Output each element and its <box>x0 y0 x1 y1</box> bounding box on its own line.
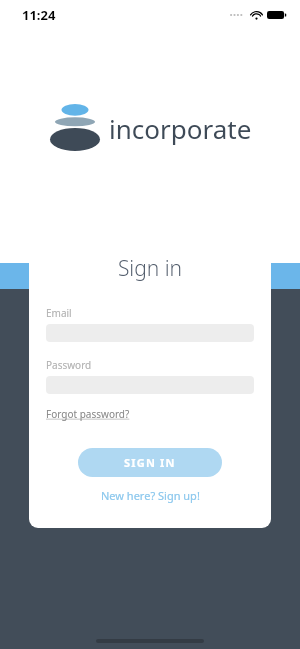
staticText: Forgot password? <box>46 407 130 421</box>
staticText: Email <box>46 306 72 320</box>
staticText: SIGN IN <box>124 455 176 470</box>
button[interactable]: Forgot password? <box>46 407 130 421</box>
button[interactable]: New here? Sign up! <box>101 488 200 503</box>
staticText: Sign in <box>29 254 271 283</box>
staticText: 11:24 <box>22 6 56 24</box>
staticText: New here? Sign up! <box>101 488 200 503</box>
button[interactable]: SIGN IN <box>78 448 222 477</box>
staticText: Password <box>46 358 92 372</box>
staticText: incorporate <box>109 111 252 146</box>
